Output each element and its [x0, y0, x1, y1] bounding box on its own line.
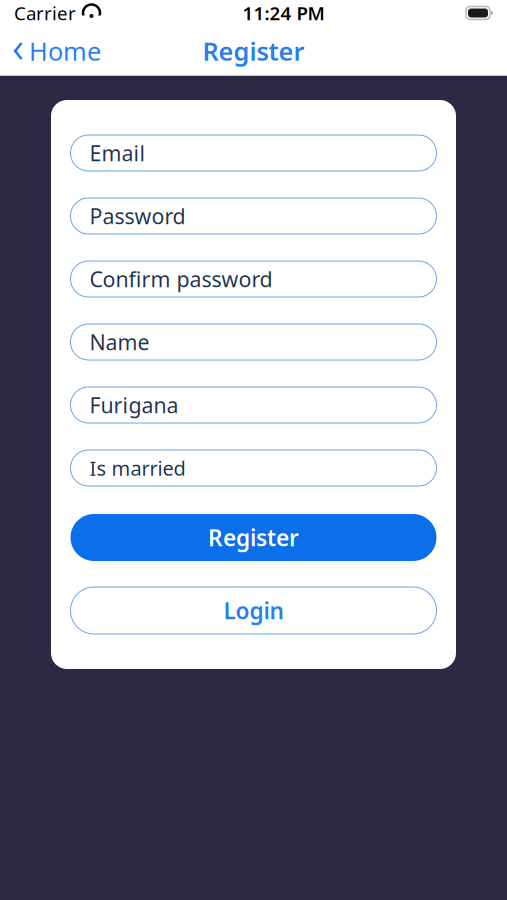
button[interactable]: Register — [70, 514, 436, 561]
button[interactable]: Furigana — [70, 387, 436, 423]
staticText: Register — [202, 34, 304, 68]
staticText: Register — [208, 522, 299, 552]
staticText: Password — [89, 202, 185, 230]
staticText: Carrier — [14, 1, 76, 25]
button[interactable]: Is married — [70, 450, 436, 486]
button[interactable]: Login — [70, 587, 436, 634]
button[interactable]: Home — [0, 26, 101, 76]
staticText: Furigana — [89, 391, 178, 419]
button[interactable]: Password — [70, 198, 436, 234]
staticText: Email — [89, 139, 145, 167]
button[interactable]: Confirm password — [70, 261, 436, 297]
staticText: Confirm password — [89, 265, 272, 293]
staticText: Home — [29, 34, 101, 68]
staticText: Name — [89, 328, 149, 356]
staticText: 11:24 PM — [242, 1, 324, 25]
button[interactable]: Email — [70, 135, 436, 171]
button[interactable]: Name — [70, 324, 436, 360]
staticText: Is married — [89, 455, 185, 481]
staticText: Login — [223, 595, 283, 625]
